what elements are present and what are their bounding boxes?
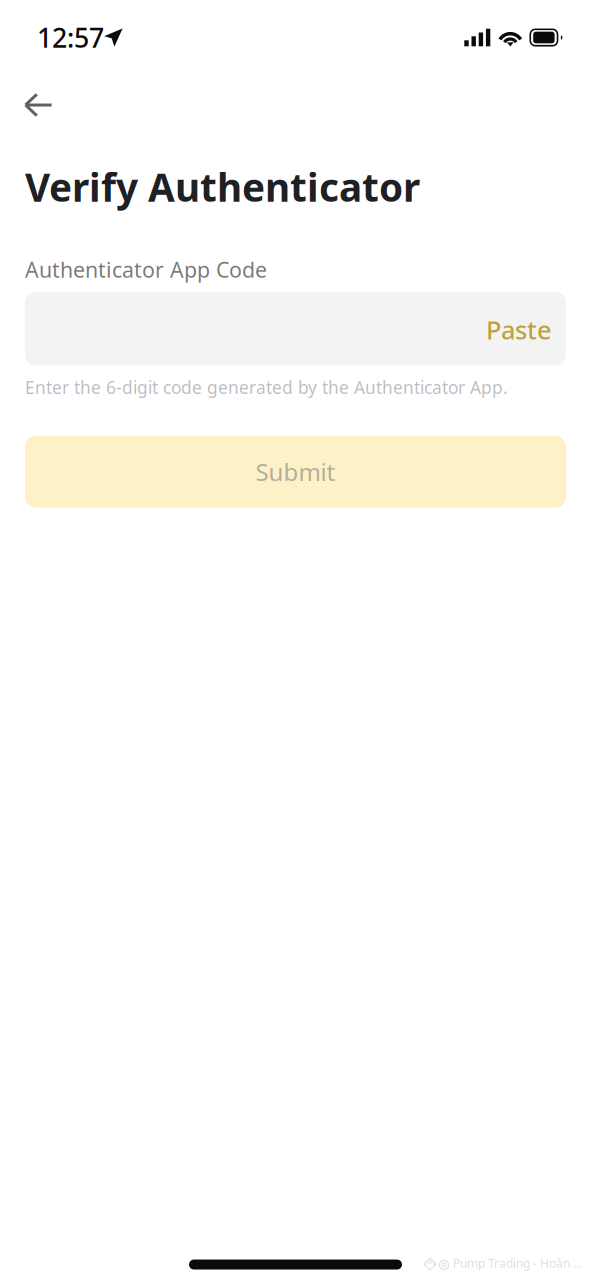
staticText: Pump Trading - Hoàn ...: [453, 1255, 582, 1271]
button[interactable]: Paste: [476, 302, 558, 355]
staticText: 12:57: [37, 20, 104, 55]
staticText: Verify Authenticator: [25, 161, 420, 212]
staticText: Authenticator App Code: [25, 255, 267, 284]
button[interactable]: Back: [0, 75, 68, 130]
staticText: Submit: [255, 456, 335, 488]
button[interactable]: Submit: [25, 436, 566, 508]
staticText: Enter the 6-digit code generated by the …: [25, 376, 508, 399]
staticText: Paste: [486, 313, 552, 346]
